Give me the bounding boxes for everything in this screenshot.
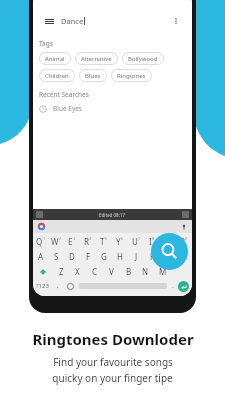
- button[interactable]: H: [112, 249, 128, 264]
- button[interactable]: I: [144, 234, 160, 249]
- staticText: N: [142, 266, 149, 277]
- button[interactable]: Ringtones: [111, 69, 152, 82]
- button[interactable]: B: [120, 264, 137, 279]
- button[interactable]: Dance: [39, 10, 186, 32]
- staticText: K: [150, 251, 155, 262]
- staticText: Animal: [45, 55, 65, 63]
- staticText: D: [69, 251, 75, 262]
- staticText: Z: [59, 266, 64, 277]
- button[interactable]: Blue Eyes: [39, 104, 186, 113]
- staticText: 5: [105, 236, 108, 241]
- button[interactable]: Enter: [178, 281, 189, 292]
- staticText: Find your favourite songs: [53, 355, 173, 369]
- button[interactable]: Shift: [33, 264, 53, 279]
- staticText: G: [101, 251, 107, 262]
- button[interactable]: ?123: [36, 282, 49, 290]
- button[interactable]: Alternative: [75, 52, 118, 65]
- button[interactable]: Children: [39, 69, 75, 82]
- staticText: Children: [45, 72, 69, 80]
- button[interactable]: Emoji: [67, 283, 74, 290]
- staticText: Ñ: [181, 251, 188, 262]
- button[interactable]: M: [154, 264, 171, 279]
- staticText: 1: [43, 236, 46, 241]
- button[interactable]: P: [176, 234, 192, 249]
- staticText: U: [132, 236, 138, 247]
- button[interactable]: O: [160, 234, 176, 249]
- button[interactable]: Z: [53, 264, 69, 279]
- staticText: Ringtones: [117, 72, 146, 80]
- staticText: X: [75, 266, 80, 277]
- button[interactable]: T: [96, 234, 112, 249]
- staticText: 6: [121, 236, 124, 241]
- staticText: I: [149, 236, 152, 247]
- button[interactable]: D: [64, 249, 80, 264]
- button[interactable]: F: [80, 249, 96, 264]
- staticText: Blues: [85, 72, 101, 80]
- staticText: Edited 08:17: [99, 212, 126, 218]
- staticText: R: [84, 236, 89, 247]
- button[interactable]: Ñ: [176, 249, 192, 264]
- button[interactable]: Search: [151, 233, 188, 270]
- staticText: Dance: [61, 16, 84, 26]
- button[interactable]: X: [69, 264, 86, 279]
- button[interactable]: Animal: [39, 52, 71, 65]
- button[interactable]: C: [86, 264, 103, 279]
- staticText: M: [159, 266, 167, 277]
- staticText: quicky on your finger tipe: [52, 371, 173, 385]
- button[interactable]: Y: [112, 234, 128, 249]
- staticText: Tags: [39, 39, 53, 48]
- staticText: E: [68, 236, 73, 247]
- staticText: P: [180, 236, 185, 247]
- staticText: 7: [138, 236, 141, 241]
- staticText: Blue Eyes: [53, 104, 82, 113]
- staticText: A: [38, 251, 44, 262]
- staticText: W: [51, 236, 59, 247]
- staticText: Alternative: [81, 55, 112, 63]
- staticText: F: [86, 251, 91, 262]
- button[interactable]: E: [64, 234, 80, 249]
- button[interactable]: Q: [33, 234, 48, 249]
- button[interactable]: W: [48, 234, 64, 249]
- staticText: O: [163, 236, 170, 247]
- staticText: ,: [57, 282, 59, 290]
- button[interactable]: J: [128, 249, 144, 264]
- staticText: L: [166, 251, 171, 262]
- staticText: V: [109, 266, 114, 277]
- staticText: Q: [36, 236, 43, 247]
- staticText: Ringtones Downloder: [32, 329, 194, 349]
- staticText: S: [54, 251, 59, 262]
- staticText: C: [92, 266, 98, 277]
- button[interactable]: A: [33, 249, 48, 264]
- staticText: ?123: [36, 282, 49, 290]
- staticText: Bollywood: [128, 55, 158, 63]
- button[interactable]: K: [144, 249, 160, 264]
- staticText: 8: [152, 236, 155, 241]
- staticText: 4: [89, 236, 92, 241]
- staticText: Recent Searches: [39, 90, 89, 99]
- staticText: H: [117, 251, 123, 262]
- staticText: .: [172, 282, 174, 290]
- button[interactable]: Backspace: [171, 264, 192, 279]
- staticText: B: [126, 266, 132, 277]
- button[interactable]: Bollywood: [122, 52, 164, 65]
- staticText: 0: [185, 236, 188, 241]
- button[interactable]: S: [48, 249, 64, 264]
- staticText: Y: [116, 236, 121, 247]
- staticText: J: [135, 251, 138, 262]
- staticText: 3: [73, 236, 76, 241]
- button[interactable]: Blues: [79, 69, 107, 82]
- button[interactable]: U: [128, 234, 144, 249]
- button[interactable]: R: [80, 234, 96, 249]
- button[interactable]: G: [96, 249, 112, 264]
- staticText: T: [100, 236, 105, 247]
- button[interactable]: V: [103, 264, 120, 279]
- staticText: 2: [59, 236, 62, 241]
- button[interactable]: N: [137, 264, 154, 279]
- button[interactable]: L: [160, 249, 176, 264]
